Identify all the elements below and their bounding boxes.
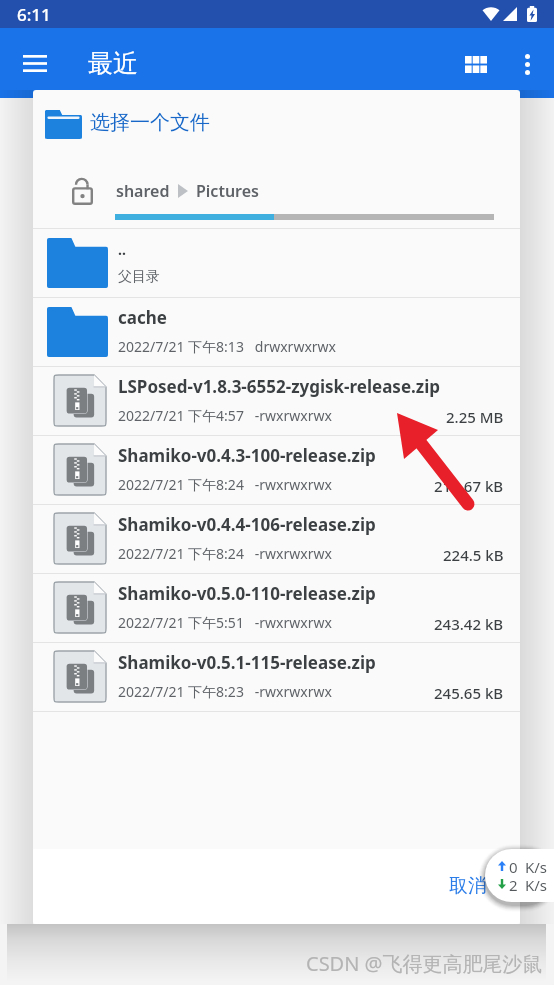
button[interactable]: Shamiko-v0.5.1-115-release.zip — [33, 643, 520, 711]
staticText: 最近 — [88, 48, 138, 79]
staticText: Shamiko-v0.4.3-100-release.zip — [118, 444, 448, 467]
staticText: cache — [118, 306, 498, 329]
staticText: 2022/7/21 下午8:13 drwxrwxrwx — [118, 337, 336, 356]
staticText: 224.5 kB — [443, 545, 504, 565]
button[interactable]: Shamiko-v0.4.3-100-release.zip — [33, 436, 520, 504]
staticText: Shamiko-v0.4.4-106-release.zip — [118, 513, 448, 536]
button[interactable]: Grid view — [453, 41, 499, 87]
staticText: 2022/7/21 下午5:51 -rwxrwxrwx — [118, 613, 332, 632]
staticText: 243.42 kB — [434, 614, 504, 634]
staticText: 2.25 MB — [446, 407, 504, 427]
staticText: 2022/7/21 下午8:23 -rwxrwxrwx — [118, 682, 332, 701]
other: Network speed — [485, 849, 554, 902]
button[interactable]: .. — [33, 229, 520, 297]
button[interactable]: Shamiko-v0.4.4-106-release.zip — [33, 505, 520, 573]
staticText: 2 — [509, 875, 518, 895]
staticText: 取消 — [449, 874, 487, 898]
staticText: Pictures — [196, 180, 259, 202]
staticText: Shamiko-v0.5.0-110-release.zip — [118, 582, 448, 605]
staticText: Shamiko-v0.5.1-115-release.zip — [118, 651, 448, 674]
staticText: 245.65 kB — [434, 683, 504, 703]
button[interactable]: More options — [504, 41, 550, 87]
staticText: K/s — [525, 857, 548, 877]
staticText: 2022/7/21 下午8:24 -rwxrwxrwx — [118, 544, 332, 563]
staticText: .. — [118, 240, 498, 259]
staticText: shared — [116, 180, 170, 202]
button[interactable]: Menu — [13, 41, 57, 85]
button[interactable]: LSPosed-v1.8.3-6552-zygisk-release.zip — [33, 367, 520, 435]
staticText: 0 — [509, 857, 518, 877]
staticText: CSDN @飞得更高肥尾沙鼠 — [306, 950, 543, 977]
staticText: 选择一个文件 — [90, 110, 210, 135]
staticText: LSPosed-v1.8.3-6552-zygisk-release.zip — [118, 375, 448, 398]
staticText: 2022/7/21 下午4:57 -rwxrwxrwx — [118, 406, 332, 425]
staticText: 6:11 — [17, 3, 51, 26]
staticText: 父目录 — [118, 268, 160, 286]
staticText: K/s — [525, 875, 548, 895]
button[interactable]: 取消 — [433, 866, 503, 906]
staticText: 2022/7/21 下午8:24 -rwxrwxrwx — [118, 475, 332, 494]
button[interactable]: Shamiko-v0.5.0-110-release.zip — [33, 574, 520, 642]
staticText: 213.67 kB — [434, 476, 504, 496]
button[interactable]: cache — [33, 298, 520, 366]
